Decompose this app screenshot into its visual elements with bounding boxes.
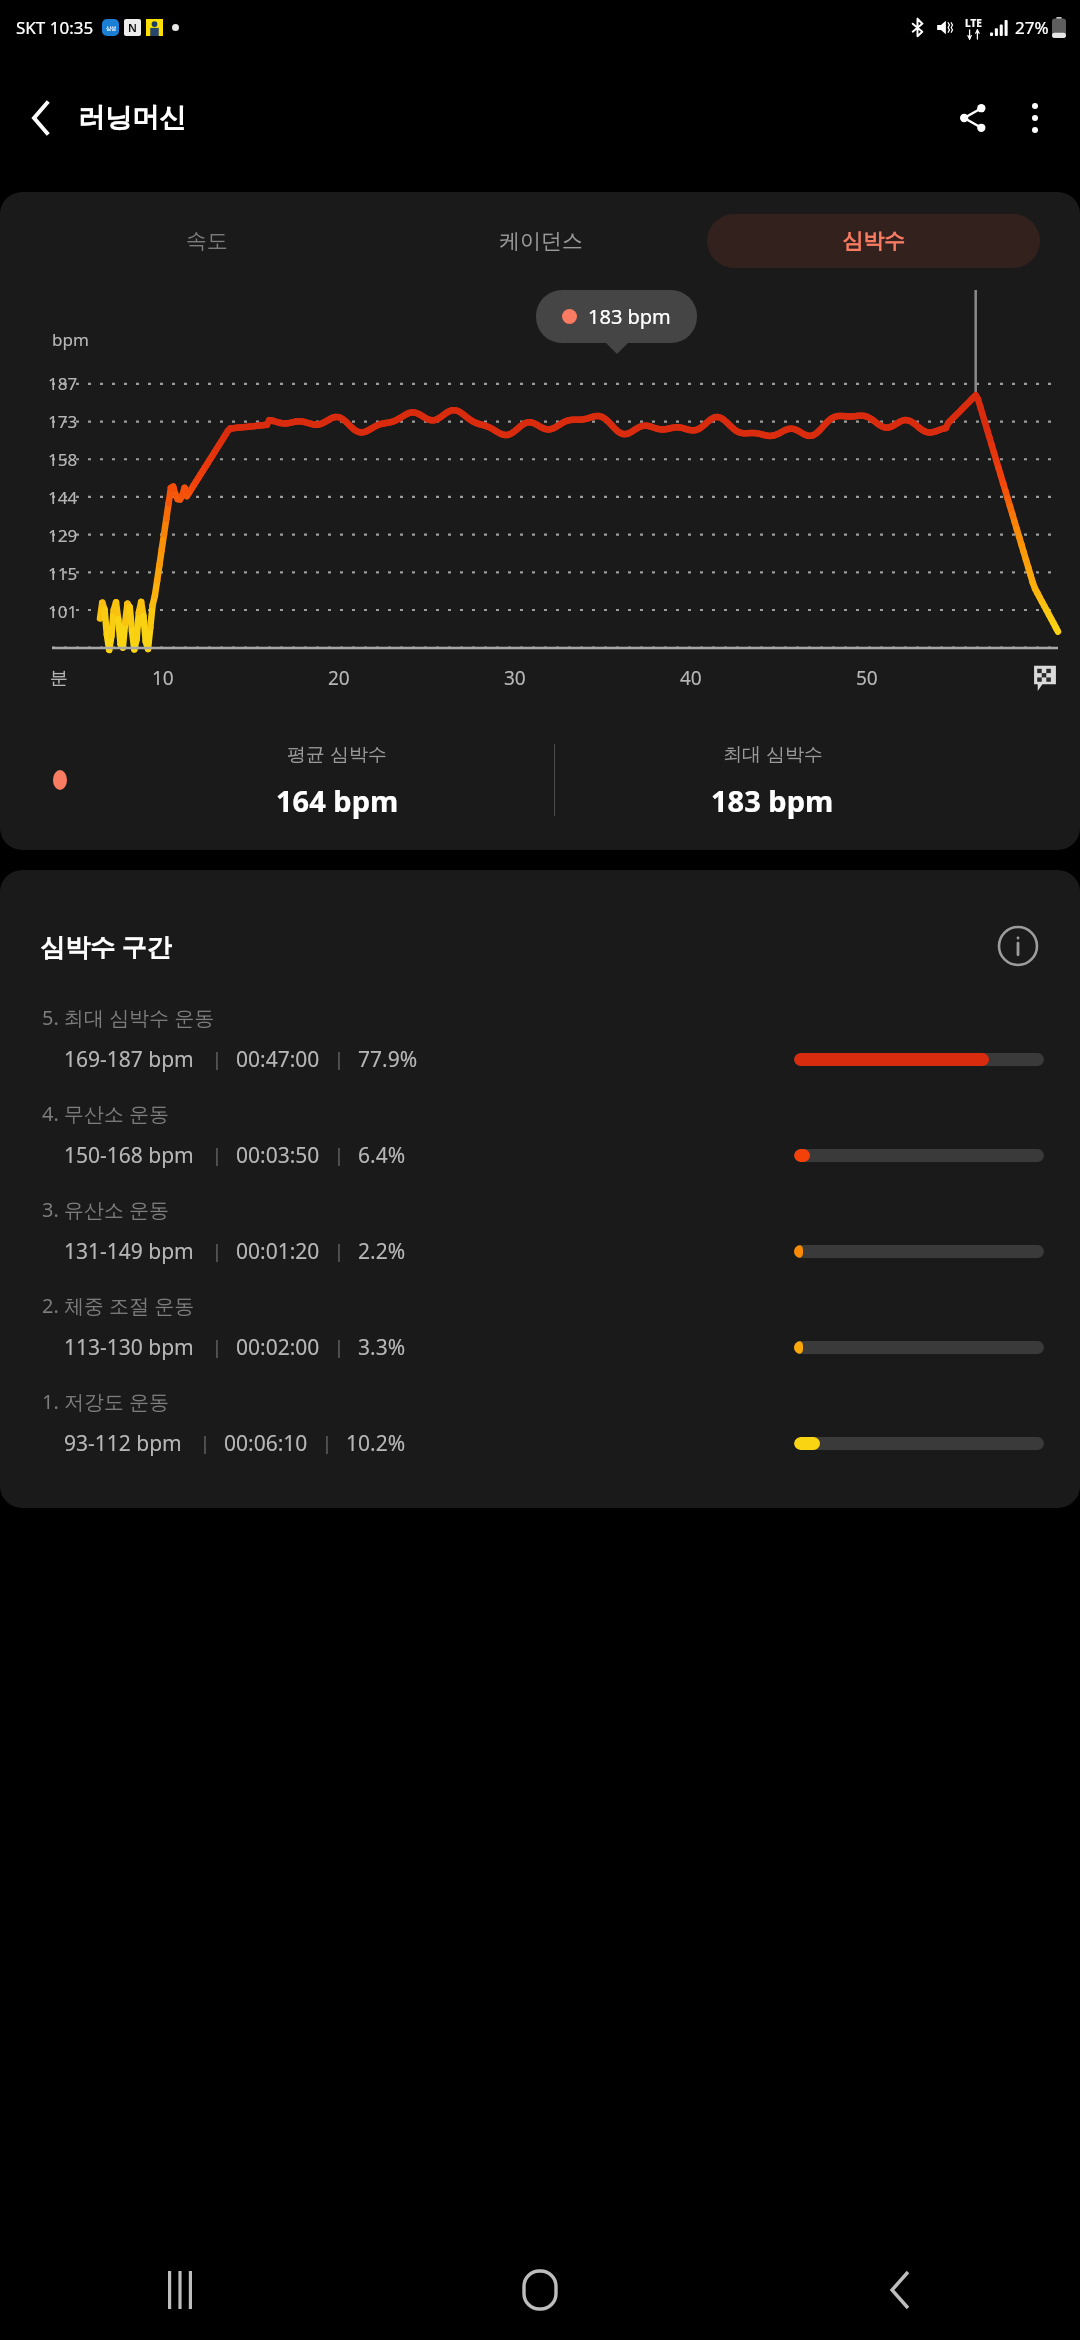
staticText: 10.2% — [346, 1429, 406, 1458]
button[interactable]: 1. 저강도 운동 — [0, 1386, 1080, 1482]
staticText: 10 — [152, 665, 174, 691]
staticText: 30 — [504, 665, 526, 691]
staticText: 164 bpm — [276, 781, 399, 820]
staticText: N — [128, 20, 137, 35]
button[interactable]: 183 bpm — [536, 290, 697, 343]
button[interactable]: Recent apps — [0, 2240, 360, 2340]
staticText: 113-130 bpm — [64, 1333, 194, 1362]
staticText: 심박수 구간 — [40, 929, 172, 963]
staticText: 1. 저강도 운동 — [42, 1388, 170, 1415]
staticText: 6.4% — [358, 1141, 406, 1170]
staticText: 50 — [856, 665, 878, 691]
button[interactable]: 속도 — [40, 214, 374, 268]
staticText: 5. 최대 심박수 운동 — [42, 1004, 215, 1031]
staticText: 최대 심박수 — [723, 741, 823, 767]
staticText: 00:02:00 — [236, 1333, 320, 1362]
staticText: 77.9% — [358, 1045, 418, 1074]
staticText: 150-168 bpm — [64, 1141, 194, 1170]
staticText: | — [212, 1143, 222, 1168]
staticText: LTE — [965, 16, 982, 30]
button[interactable]: Back — [720, 2240, 1080, 2340]
staticText: | — [200, 1431, 210, 1456]
staticText: 101 — [48, 600, 78, 623]
staticText: 131-149 bpm — [64, 1237, 194, 1266]
button[interactable]: 2. 체중 조절 운동 — [0, 1290, 1080, 1386]
staticText: 40 — [680, 665, 702, 691]
staticText: 분 — [50, 667, 68, 690]
staticText: | — [334, 1239, 344, 1264]
staticText: | — [334, 1047, 344, 1072]
staticText: 187 — [48, 372, 78, 395]
button[interactable]: 심박수 — [707, 214, 1040, 268]
button[interactable]: Home — [360, 2240, 720, 2340]
staticText: 129 — [48, 524, 78, 547]
staticText: 00:47:00 — [236, 1045, 320, 1074]
staticText: 00:06:10 — [224, 1429, 308, 1458]
staticText: 삼성 — [106, 25, 116, 31]
staticText: | — [212, 1047, 222, 1072]
staticText: | — [334, 1335, 344, 1360]
button[interactable]: Share — [942, 87, 1004, 149]
staticText: | — [334, 1143, 344, 1168]
staticText: 00:01:20 — [236, 1237, 320, 1266]
staticText: 173 — [48, 410, 78, 433]
staticText: 2. 체중 조절 운동 — [42, 1292, 195, 1319]
staticText: 3. 유산소 운동 — [42, 1196, 170, 1223]
staticText: | — [212, 1239, 222, 1264]
staticText: 158 — [48, 448, 78, 471]
staticText: 2.2% — [358, 1237, 406, 1266]
staticText: 115 — [48, 562, 78, 585]
button[interactable]: 3. 유산소 운동 — [0, 1194, 1080, 1290]
button[interactable]: 5. 최대 심박수 운동 — [0, 1002, 1080, 1098]
staticText: 183 bpm — [588, 303, 671, 330]
staticText: 속도 — [186, 228, 228, 254]
staticText: 183 bpm — [711, 781, 834, 820]
staticText: 케이던스 — [499, 228, 583, 254]
staticText: 00:03:50 — [236, 1141, 320, 1170]
staticText: 20 — [328, 665, 350, 691]
button[interactable]: 4. 무산소 운동 — [0, 1098, 1080, 1194]
staticText: 27% — [1015, 16, 1049, 39]
staticText: 평균 심박수 — [287, 741, 387, 767]
staticText: 3.3% — [358, 1333, 406, 1362]
button[interactable]: Back — [12, 90, 68, 146]
staticText: bpm — [52, 328, 89, 351]
staticText: 4. 무산소 운동 — [42, 1100, 170, 1127]
staticText: 144 — [48, 486, 78, 509]
staticText: 러닝머신 — [78, 101, 186, 135]
button[interactable]: More options — [1004, 87, 1066, 149]
staticText: 93-112 bpm — [64, 1429, 182, 1458]
staticText: 심박수 — [842, 228, 905, 254]
button[interactable]: Information — [990, 918, 1046, 974]
button[interactable]: 케이던스 — [374, 214, 707, 268]
staticText: SKT 10:35 — [16, 16, 94, 39]
staticText: | — [322, 1431, 332, 1456]
staticText: 169-187 bpm — [64, 1045, 194, 1074]
staticText: | — [212, 1335, 222, 1360]
